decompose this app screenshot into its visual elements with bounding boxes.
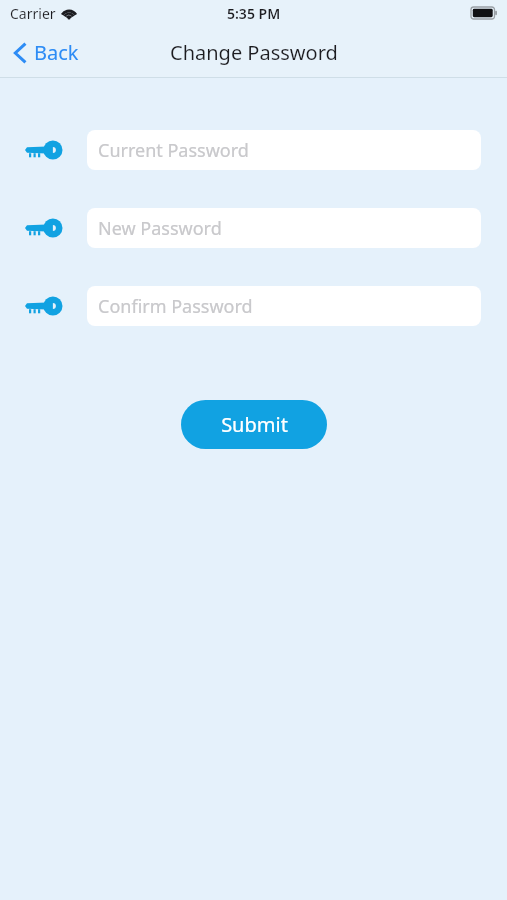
other: Password key (24, 294, 64, 318)
staticText: Back (34, 39, 79, 66)
staticText: New Password (98, 216, 222, 241)
staticText: 5:35 PM (227, 4, 281, 23)
button[interactable]: Submit (181, 400, 327, 449)
staticText: Submit (221, 411, 288, 438)
staticText: Confirm Password (98, 294, 253, 319)
other: Password key (24, 216, 64, 240)
staticText: Change Password (170, 39, 338, 66)
other: Password key (24, 138, 64, 162)
staticText: Current Password (98, 138, 249, 163)
button[interactable]: Current Password (87, 130, 481, 170)
staticText: Carrier (10, 4, 56, 23)
button[interactable]: Back (0, 33, 91, 72)
button[interactable]: Confirm Password (87, 286, 481, 326)
button[interactable]: New Password (87, 208, 481, 248)
